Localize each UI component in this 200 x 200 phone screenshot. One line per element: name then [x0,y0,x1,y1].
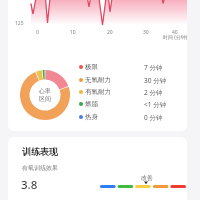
button[interactable]: 燃脂 [79,99,187,109]
button[interactable]: 125 [8,0,187,131]
staticText: 有氧耐力 [85,88,111,96]
staticText: 无氧耐力 [85,76,111,84]
staticText: 7 分钟 [144,63,163,72]
staticText: 区间 [39,95,51,103]
staticText: 训练表现 [22,146,58,157]
staticText: 30 [143,29,149,36]
staticText: 热身 [85,113,98,121]
staticText: 10 [70,29,76,36]
staticText: 极限 [85,63,98,71]
button[interactable]: 极限 [79,62,187,72]
staticText: 20 [107,29,113,36]
staticText: 心率 [39,87,51,95]
staticText: 40 [172,29,178,36]
button[interactable]: 热身 [79,112,187,122]
button[interactable]: 有氧耐力 [79,87,187,97]
staticText: 0 [36,29,39,36]
staticText: 30 分钟 [144,76,167,85]
button[interactable]: 无氧耐力 [79,75,187,85]
staticText: 有氧训练效果 [22,164,58,172]
staticText: 2 分钟 [144,88,163,97]
staticText: 0 分钟 [144,113,163,122]
button[interactable]: 训练表现 [8,137,187,200]
staticText: 3.8 [21,177,38,193]
staticText: 改善 [141,174,153,182]
staticText: <1 分钟 [144,100,167,109]
staticText: 125 [15,20,24,27]
staticText: 时间 (分钟) [163,34,187,41]
staticText: 燃脂 [85,100,98,108]
